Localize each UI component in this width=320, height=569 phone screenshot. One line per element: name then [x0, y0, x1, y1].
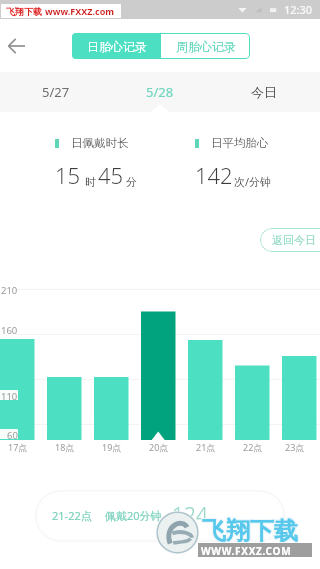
staticText: 时	[85, 175, 96, 189]
staticText: 日佩戴时长	[71, 136, 129, 150]
staticText: 日平均胎心	[211, 136, 269, 150]
staticText: 飞翔下载	[6, 6, 42, 17]
staticText: 分	[126, 175, 137, 189]
staticText: 142	[195, 160, 233, 190]
staticText: 18点	[55, 441, 75, 453]
staticText: 17点	[8, 441, 28, 453]
staticText: 124	[172, 501, 208, 530]
staticText: 飞翔下载	[202, 515, 298, 545]
staticText: 飞翔下载	[203, 517, 299, 547]
staticText: 22点	[243, 441, 263, 453]
button[interactable]: 返回今日	[260, 228, 320, 252]
button[interactable]: Back	[4, 29, 38, 63]
button[interactable]: 5/28	[108, 72, 212, 112]
staticText: 60	[7, 429, 18, 439]
staticText: 19点	[102, 441, 122, 453]
staticText: 23点	[285, 441, 305, 453]
staticText: 佩戴20分钟	[105, 508, 162, 523]
staticText: 21点	[196, 441, 216, 453]
staticText: 返回今日	[272, 233, 316, 247]
staticText: 12:30	[284, 2, 313, 17]
staticText: www.FXXZ.com	[45, 5, 115, 17]
staticText: 周胎心记录	[176, 39, 236, 54]
staticText: 20点	[149, 441, 169, 453]
staticText: 次/分钟	[234, 174, 272, 189]
staticText: 5/28	[146, 83, 174, 101]
staticText: 飞翔下载	[201, 516, 297, 546]
staticText: 45	[98, 160, 124, 190]
staticText: 160	[1, 324, 18, 334]
staticText: 210	[1, 284, 18, 294]
button[interactable]: 日胎心记录	[72, 33, 161, 59]
button[interactable]: 5/27	[4, 72, 108, 112]
staticText: 飞翔下载	[203, 516, 299, 546]
staticText: 5/27	[42, 83, 70, 101]
staticText: 日胎心记录	[87, 39, 147, 54]
staticText: 飞翔下载	[203, 515, 299, 545]
button[interactable]: 今日	[212, 72, 316, 112]
staticText: 今日	[251, 84, 277, 100]
staticText: 飞翔下载	[201, 515, 297, 545]
staticText: 15	[55, 160, 81, 190]
staticText: 飞翔下载	[202, 516, 298, 546]
staticText: 飞翔下载	[201, 517, 297, 547]
staticText: 飞翔下载	[202, 517, 298, 547]
button[interactable]: 周胎心记录	[161, 33, 250, 59]
staticText: 21-22点	[52, 508, 92, 523]
button[interactable]: 21-22点	[37, 492, 283, 539]
staticText: 110	[1, 390, 18, 400]
staticText: WWW.FXXZ.COM	[201, 544, 292, 558]
